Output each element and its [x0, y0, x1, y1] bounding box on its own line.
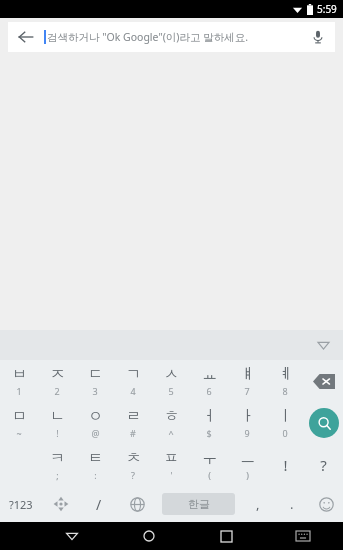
staticText: ㅋ	[50, 449, 65, 468]
staticText: '	[170, 469, 173, 481]
staticText: /	[96, 495, 102, 514]
staticText: ?123	[9, 497, 33, 512]
staticText: @	[91, 427, 100, 439]
staticText: 한글	[188, 497, 210, 511]
button[interactable]: ,	[241, 486, 275, 522]
button[interactable]: Back	[54, 522, 90, 550]
staticText: ㄱ	[126, 365, 141, 384]
button[interactable]: ㅌ	[76, 444, 114, 486]
button[interactable]: ㅏ	[228, 402, 266, 444]
staticText: :	[94, 469, 97, 481]
button[interactable]: ㄴ	[38, 402, 76, 444]
staticText: ㄷ	[88, 365, 103, 384]
button[interactable]: Recent apps	[208, 522, 244, 550]
staticText: ㅌ	[88, 449, 103, 468]
button[interactable]: ㄷ	[76, 360, 114, 402]
staticText: (	[208, 469, 211, 481]
staticText: ㅊ	[126, 449, 141, 468]
button[interactable]: 한글	[162, 493, 235, 515]
button[interactable]: Change language	[118, 486, 156, 522]
button[interactable]: ㅖ	[266, 360, 304, 402]
staticText: 4	[130, 385, 136, 397]
staticText: 5:59	[317, 2, 337, 16]
staticText: $	[206, 427, 212, 439]
staticText: ㅖ	[278, 365, 293, 384]
staticText: ㅣ	[278, 407, 293, 426]
button[interactable]: ㅣ	[266, 402, 304, 444]
staticText: ㅓ	[202, 407, 217, 426]
staticText: 1	[16, 385, 22, 397]
staticText: ㅈ	[50, 365, 65, 384]
staticText: ㅁ	[12, 407, 27, 426]
button[interactable]: Backspace	[307, 364, 341, 398]
staticText: )	[246, 469, 249, 481]
button[interactable]: Emoji	[309, 486, 343, 522]
button[interactable]: Voice search	[301, 22, 335, 52]
staticText: !	[283, 455, 288, 475]
button[interactable]: ㄱ	[114, 360, 152, 402]
button[interactable]: ㅅ	[152, 360, 190, 402]
staticText: ㅜ	[202, 449, 217, 468]
staticText: ~	[16, 427, 22, 439]
staticText: ㅛ	[202, 365, 217, 384]
button[interactable]: ㅡ	[228, 444, 266, 486]
staticText: ㅇ	[88, 407, 103, 426]
staticText: ;	[56, 469, 59, 481]
staticText: ㄴ	[50, 407, 65, 426]
button[interactable]: ㅊ	[114, 444, 152, 486]
staticText: .	[290, 495, 294, 513]
staticText: 검색하거나 "Ok Google"(이)라고 말하세요.	[47, 30, 249, 44]
staticText: ?	[320, 455, 327, 475]
button[interactable]: ㅁ	[0, 402, 38, 444]
button[interactable]: Back	[8, 22, 335, 52]
button[interactable]: ㅋ	[38, 444, 76, 486]
button[interactable]: ㅛ	[190, 360, 228, 402]
staticText: #	[130, 427, 136, 439]
button[interactable]: ㅇ	[76, 402, 114, 444]
staticText: ㅒ	[240, 365, 255, 384]
staticText: ^	[168, 427, 174, 439]
staticText: 0	[282, 427, 288, 439]
staticText: ㅅ	[164, 365, 179, 384]
button[interactable]: Back	[8, 22, 44, 52]
button[interactable]: Hide suggestions	[303, 330, 343, 360]
button[interactable]: ㅍ	[152, 444, 190, 486]
button[interactable]: ㅓ	[190, 402, 228, 444]
staticText: 6	[206, 385, 212, 397]
button[interactable]: /	[80, 486, 118, 522]
button[interactable]: ㅒ	[228, 360, 266, 402]
button[interactable]: ㅎ	[152, 402, 190, 444]
staticText: 3	[92, 385, 98, 397]
staticText: ㅏ	[240, 407, 255, 426]
button[interactable]: Home	[131, 522, 167, 550]
button[interactable]: ㄹ	[114, 402, 152, 444]
button[interactable]: .	[275, 486, 309, 522]
button[interactable]: ㅂ	[0, 360, 38, 402]
staticText: 5	[168, 385, 174, 397]
button[interactable]: ?123	[0, 486, 42, 522]
staticText: 9	[244, 427, 250, 439]
button[interactable]: Search	[309, 408, 339, 438]
staticText: 7	[244, 385, 250, 397]
button[interactable]: ㅈ	[38, 360, 76, 402]
button[interactable]: !	[266, 444, 304, 486]
staticText: 2	[54, 385, 60, 397]
button[interactable]: Keyboard	[285, 522, 321, 550]
staticText: ,	[256, 495, 260, 513]
button[interactable]: ?	[304, 444, 343, 486]
button[interactable]: Move cursor	[42, 486, 80, 522]
button[interactable]: ㅜ	[190, 444, 228, 486]
staticText: ㄹ	[126, 407, 141, 426]
staticText: ㅡ	[240, 449, 255, 468]
staticText: ㅂ	[12, 365, 27, 384]
staticText: ?	[131, 469, 135, 481]
staticText: 8	[282, 385, 288, 397]
staticText: ㅍ	[164, 449, 179, 468]
staticText: !	[56, 427, 59, 439]
staticText: ㅎ	[164, 407, 179, 426]
